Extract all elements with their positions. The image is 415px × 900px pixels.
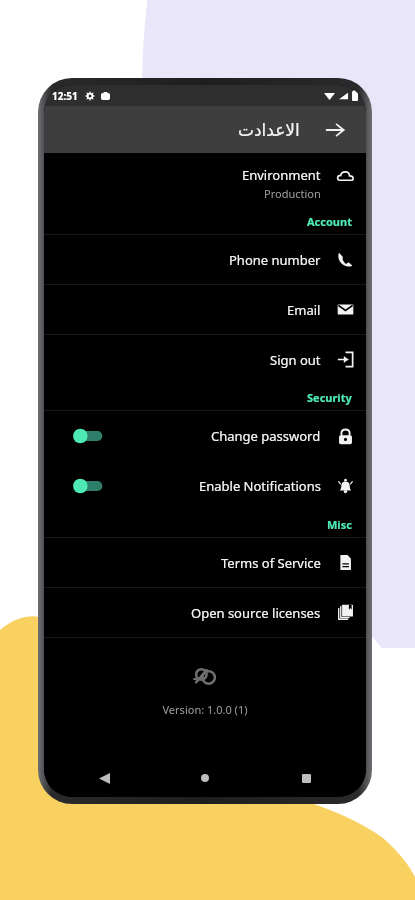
staticText: Email <box>287 301 321 319</box>
staticText: Version: 1.0.0 (1) <box>44 702 366 717</box>
staticText: Change password <box>211 427 321 445</box>
button[interactable]: Enable Notifications <box>44 461 366 511</box>
staticText: Account <box>307 214 352 229</box>
button[interactable]: Terms of Service <box>44 538 366 587</box>
button[interactable]: Sign out <box>44 335 366 384</box>
staticText: Open source licenses <box>191 604 321 622</box>
staticText: Phone number <box>229 251 321 269</box>
staticText: Terms of Service <box>221 554 321 572</box>
staticText: Sign out <box>270 351 321 369</box>
button[interactable]: Email <box>44 285 366 334</box>
staticText: 12:51 <box>52 89 78 103</box>
staticText: Enable Notifications <box>199 477 321 495</box>
button[interactable]: Change password <box>44 411 366 461</box>
staticText: Environment <box>242 166 321 184</box>
staticText: Misc <box>327 517 352 532</box>
button[interactable]: Open source licenses <box>44 588 366 637</box>
button[interactable]: Back <box>90 764 118 792</box>
staticText: Production <box>264 186 321 201</box>
button[interactable]: Phone number <box>44 235 366 284</box>
button[interactable]: Environment <box>44 158 366 208</box>
staticText: الاعدادت <box>238 120 300 140</box>
button[interactable]: Back <box>318 113 352 147</box>
staticText: Security <box>307 390 352 405</box>
button[interactable]: Home <box>191 764 219 792</box>
button[interactable]: Recents <box>292 764 320 792</box>
